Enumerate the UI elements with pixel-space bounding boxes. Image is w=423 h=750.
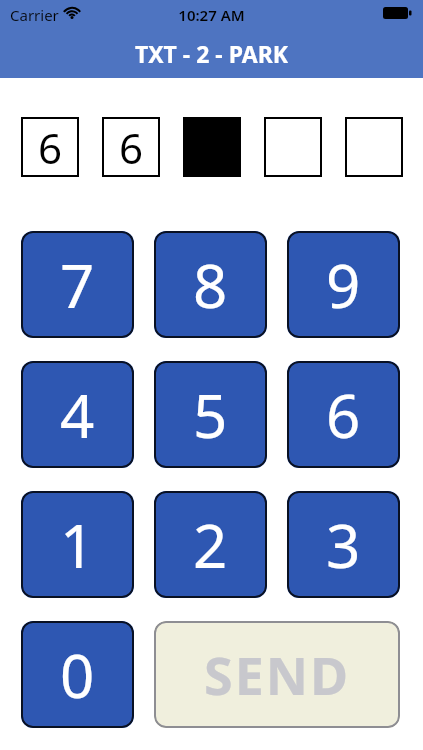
staticText: 1 <box>60 504 95 586</box>
staticText: 2 <box>193 504 228 586</box>
button[interactable]: 3 <box>287 491 400 598</box>
button[interactable]: 5 <box>154 361 267 468</box>
staticText: 3 <box>326 504 361 586</box>
staticText: Carrier <box>10 5 59 25</box>
staticText: 6 <box>326 374 361 456</box>
button[interactable]: 1 <box>21 491 134 598</box>
staticText: 6 <box>119 119 144 176</box>
staticText: 10:27 AM <box>0 5 423 25</box>
staticText: 0 <box>60 634 95 716</box>
button[interactable]: 0 <box>21 621 134 728</box>
staticText: 7 <box>60 244 95 326</box>
button[interactable]: 2 <box>154 491 267 598</box>
staticText: TXT - 2 - PARK <box>0 38 423 69</box>
staticText: 4 <box>60 374 95 456</box>
staticText: 8 <box>193 244 228 326</box>
button[interactable]: 6 <box>287 361 400 468</box>
staticText: 5 <box>193 374 228 456</box>
staticText: SEND <box>204 639 351 710</box>
button[interactable]: SEND <box>154 621 400 728</box>
button[interactable]: 7 <box>21 231 134 338</box>
button[interactable]: 4 <box>21 361 134 468</box>
staticText: 6 <box>38 119 63 176</box>
button[interactable]: 8 <box>154 231 267 338</box>
staticText: 9 <box>326 244 361 326</box>
button[interactable]: 9 <box>287 231 400 338</box>
